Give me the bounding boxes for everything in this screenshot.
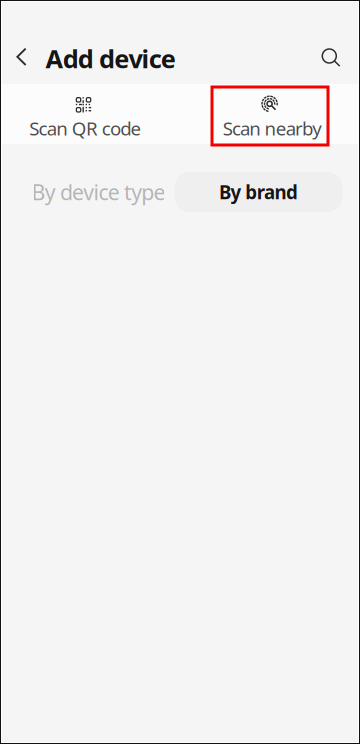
- button[interactable]: By device type: [17, 172, 180, 212]
- button[interactable]: Search: [311, 38, 351, 78]
- button[interactable]: Scan nearby: [184, 86, 360, 144]
- staticText: By device type: [31, 178, 165, 206]
- button[interactable]: Back: [4, 35, 38, 79]
- staticText: By brand: [219, 180, 298, 204]
- staticText: Scan nearby: [223, 116, 322, 141]
- button[interactable]: By brand: [174, 172, 342, 212]
- staticText: Add device: [45, 42, 176, 75]
- button[interactable]: Scan QR code: [0, 86, 176, 144]
- button[interactable]: Add device: [45, 43, 195, 73]
- staticText: Scan QR code: [29, 116, 142, 141]
